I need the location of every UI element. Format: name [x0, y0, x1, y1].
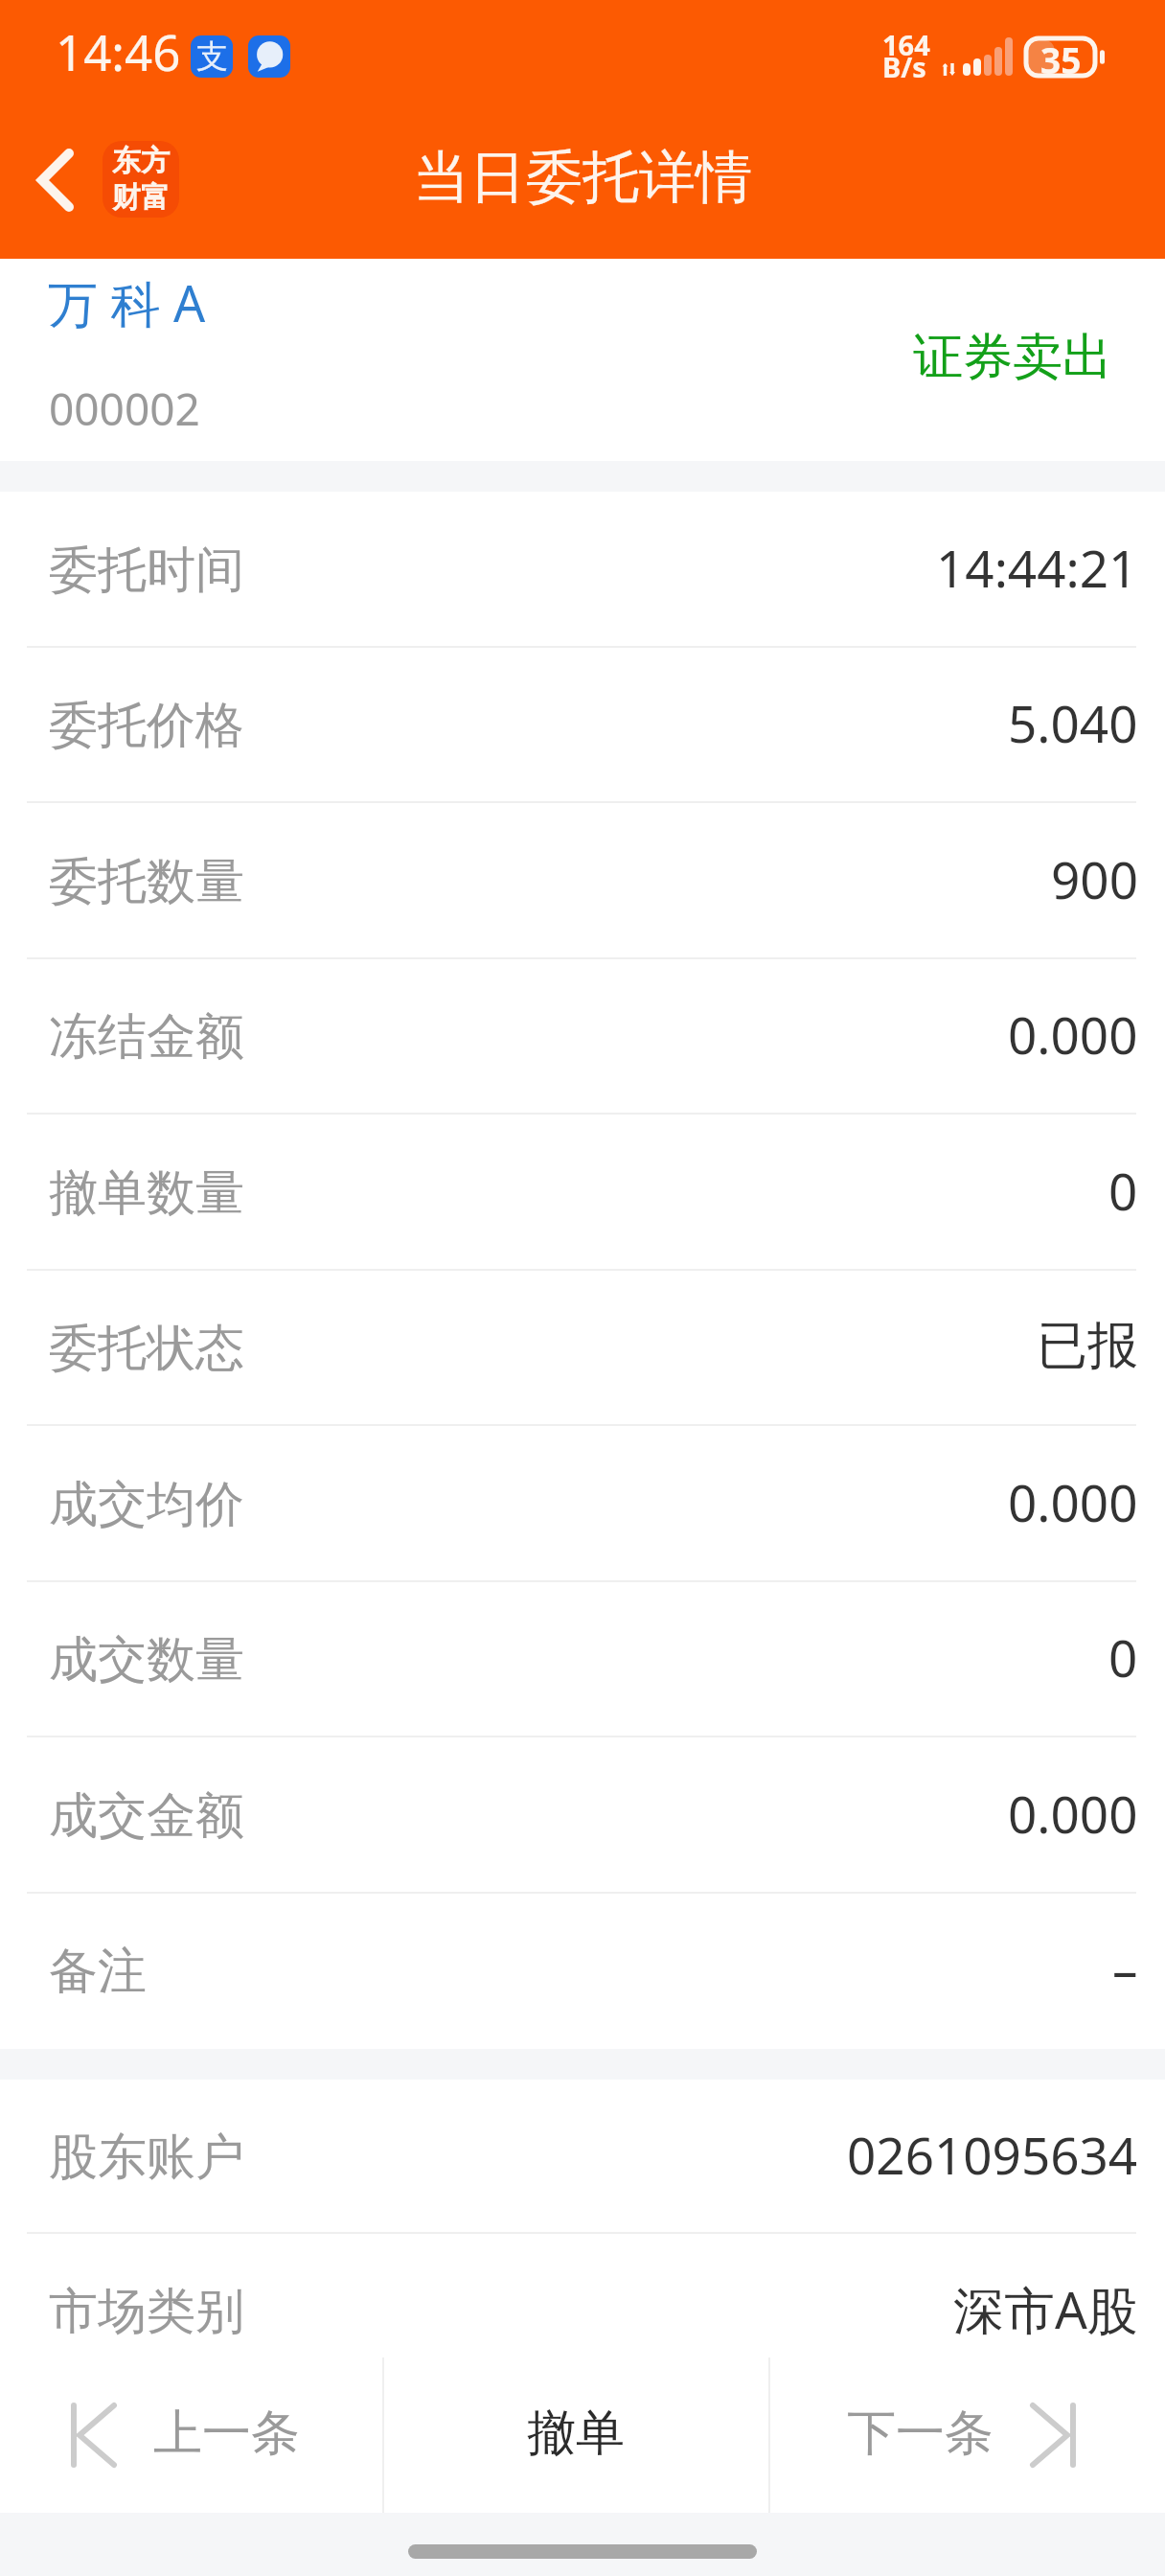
button[interactable]: 成交金额 — [0, 1737, 1165, 1894]
button[interactable]: 委托价格 — [0, 648, 1165, 803]
staticText: 35 — [1040, 35, 1082, 77]
staticText: 财富 — [112, 179, 170, 216]
staticText: 股东账户 — [49, 2127, 244, 2188]
staticText: 成交均价 — [49, 1474, 244, 1535]
staticText: 0261095634 — [847, 2120, 1138, 2189]
button[interactable]: 上一条 — [0, 2357, 382, 2513]
button[interactable]: 委托数量 — [0, 803, 1165, 959]
staticText: 000002 — [49, 379, 200, 439]
button[interactable]: 成交均价 — [0, 1426, 1165, 1582]
button[interactable]: 撤单数量 — [0, 1115, 1165, 1271]
staticText: 0 — [1108, 1156, 1138, 1225]
staticText: 成交数量 — [49, 1629, 244, 1690]
staticText: 0.000 — [1008, 1000, 1138, 1069]
button[interactable]: 成交数量 — [0, 1582, 1165, 1737]
button[interactable]: Back — [17, 123, 94, 238]
staticText: 0.000 — [1008, 1779, 1138, 1848]
button[interactable]: 备注 — [0, 1894, 1165, 2049]
staticText: 冻结金额 — [49, 1006, 244, 1068]
staticText: 14:46 — [56, 18, 181, 84]
button[interactable]: 委托时间 — [0, 492, 1165, 648]
staticText: 委托价格 — [49, 695, 244, 756]
staticText: 成交金额 — [49, 1785, 244, 1847]
staticText: 上一条 — [153, 2403, 300, 2464]
staticText: 委托数量 — [49, 851, 244, 912]
button[interactable]: 委托状态 — [0, 1271, 1165, 1426]
staticText: 900 — [1051, 844, 1138, 913]
staticText: 深市A股 — [953, 2274, 1138, 2343]
staticText: – — [1112, 1934, 1138, 2003]
staticText: 下一条 — [847, 2403, 994, 2464]
staticText: 证券卖出 — [913, 326, 1112, 389]
button[interactable]: 冻结金额 — [0, 959, 1165, 1115]
staticText: 东方 — [112, 143, 170, 179]
staticText: 备注 — [49, 1941, 147, 2002]
button[interactable]: 股东账户 — [0, 2080, 1165, 2234]
staticText: 0.000 — [1008, 1467, 1138, 1536]
staticText: 万 科 A — [48, 268, 206, 336]
staticText: 支 — [196, 36, 228, 77]
button[interactable]: 下一条 — [768, 2357, 1165, 2513]
button[interactable]: 撤单 — [382, 2357, 768, 2513]
staticText: 0 — [1108, 1622, 1138, 1691]
staticText: 14:44:21 — [936, 533, 1138, 602]
staticText: 5.040 — [1008, 688, 1138, 757]
staticText: B/s — [882, 48, 926, 85]
staticText: 撤单 — [527, 2403, 625, 2464]
staticText: 当日委托详情 — [413, 142, 752, 213]
staticText: 已报 — [1037, 1314, 1138, 1378]
staticText: 164 — [882, 26, 930, 63]
staticText: 市场类别 — [49, 2281, 244, 2342]
staticText: 委托状态 — [49, 1318, 244, 1379]
staticText: 委托时间 — [49, 540, 244, 601]
staticText: 撤单数量 — [49, 1162, 244, 1224]
button[interactable]: East Money logo — [103, 141, 179, 218]
button[interactable]: 市场类别 — [0, 2234, 1165, 2389]
